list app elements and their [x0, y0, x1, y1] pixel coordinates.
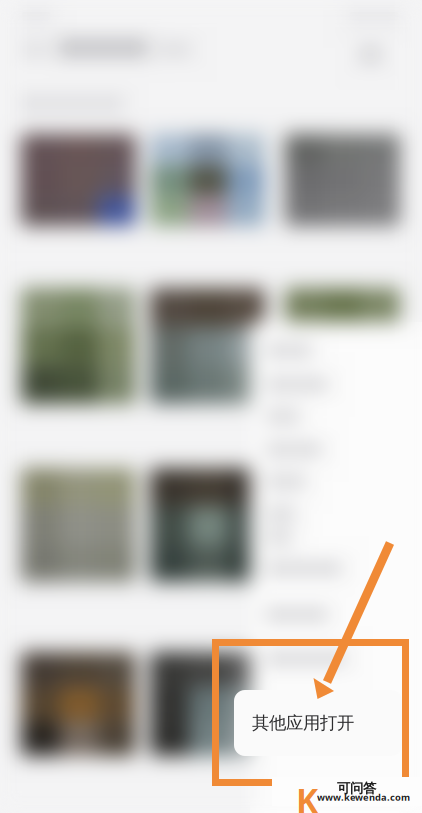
- staticText: 可问答: [337, 780, 376, 796]
- staticText: K: [296, 778, 318, 813]
- staticText: www.kewenda.com: [317, 791, 410, 803]
- staticText: 其他应用打开: [252, 712, 354, 734]
- button[interactable]: 其他应用打开: [234, 690, 402, 756]
